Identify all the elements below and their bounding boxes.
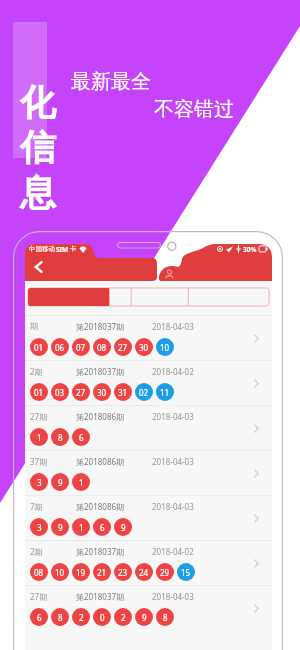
button[interactable]: 2期 — [25, 360, 272, 405]
staticText: 2018-04-03 — [152, 456, 194, 467]
staticText: 1 — [79, 522, 84, 533]
staticText: 8 — [58, 612, 63, 623]
staticText: 29 — [160, 567, 170, 578]
staticText: 1 — [37, 432, 42, 443]
staticText: 27 — [118, 342, 128, 353]
staticText: 9 — [58, 522, 63, 533]
staticText: 第2018037期 — [76, 366, 125, 377]
staticText: 37期 — [30, 456, 48, 467]
staticText: 8 — [58, 432, 63, 443]
button[interactable]: 7期 — [25, 495, 272, 540]
staticText: 2期 — [30, 546, 43, 557]
staticText: 02 — [139, 387, 149, 398]
staticText: 01 — [34, 387, 44, 398]
staticText: 第2018086期 — [76, 456, 125, 467]
button[interactable]: 27期 — [25, 405, 272, 450]
staticText: 3 — [37, 522, 42, 533]
staticText: 08 — [97, 342, 107, 353]
staticText: 1 — [79, 477, 84, 488]
staticText: 06 — [55, 342, 65, 353]
staticText: 7期 — [30, 501, 43, 512]
staticText: 30 — [97, 387, 107, 398]
staticText: 2018-04-03 — [152, 591, 194, 602]
staticText: 24 — [139, 567, 149, 578]
staticText: 2018-04-02 — [152, 366, 194, 377]
staticText: 11 — [160, 387, 170, 398]
staticText: 21 — [97, 567, 107, 578]
staticText: 最新最全 — [71, 69, 151, 94]
staticText: 期 — [30, 321, 38, 331]
staticText: 27期 — [30, 411, 48, 422]
staticText: 9 — [121, 522, 126, 533]
staticText: 6 — [37, 612, 42, 623]
staticText: 6 — [79, 432, 84, 443]
button[interactable]: 37期 — [25, 450, 272, 495]
staticText: 第2018037期 — [76, 321, 125, 332]
staticText: 2018-04-03 — [152, 411, 194, 422]
button[interactable] — [28, 288, 269, 306]
staticText: 2018-04-02 — [152, 546, 194, 557]
staticText: SIM — [56, 245, 69, 254]
staticText: 息 — [20, 170, 56, 215]
staticText: 第2018086期 — [76, 501, 125, 512]
staticText: 08 — [34, 567, 44, 578]
staticText: 10 — [55, 567, 65, 578]
button[interactable]: 2期 — [25, 540, 272, 585]
staticText: 2 — [79, 612, 84, 623]
staticText: 第2018037期 — [76, 591, 125, 602]
staticText: 0 — [100, 612, 105, 623]
staticText: 23 — [118, 567, 128, 578]
staticText: 第2018086期 — [76, 411, 125, 422]
staticText: 2期 — [30, 366, 43, 377]
staticText: 卡 — [70, 245, 77, 253]
button[interactable]: 期 — [25, 315, 272, 360]
button[interactable]: 27期 — [25, 585, 272, 630]
staticText: 2018-04-03 — [152, 321, 194, 332]
staticText: 2 — [121, 612, 126, 623]
staticText: 27 — [76, 387, 86, 398]
staticText: 化 — [20, 80, 56, 125]
staticText: 30 — [139, 342, 149, 353]
staticText: 中国移动 — [29, 245, 55, 253]
staticText: 不容错过 — [154, 97, 234, 122]
staticText: 第2018037期 — [76, 546, 125, 557]
staticText: 15 — [181, 567, 191, 578]
staticText: 19 — [76, 567, 86, 578]
staticText: 30% — [243, 245, 257, 254]
staticText: 10 — [160, 342, 170, 353]
staticText: 27期 — [30, 591, 48, 602]
staticText: 3 — [37, 477, 42, 488]
staticText: 01 — [34, 342, 44, 353]
staticText: 信 — [20, 125, 56, 170]
staticText: 8 — [163, 612, 168, 623]
staticText: 03 — [55, 387, 65, 398]
staticText: 2018-04-03 — [152, 501, 194, 512]
button[interactable]: Back — [31, 259, 47, 275]
staticText: 07 — [76, 342, 86, 353]
staticText: 9 — [142, 612, 147, 623]
staticText: 31 — [118, 387, 128, 398]
staticText: 6 — [100, 522, 105, 533]
staticText: 9 — [58, 477, 63, 488]
